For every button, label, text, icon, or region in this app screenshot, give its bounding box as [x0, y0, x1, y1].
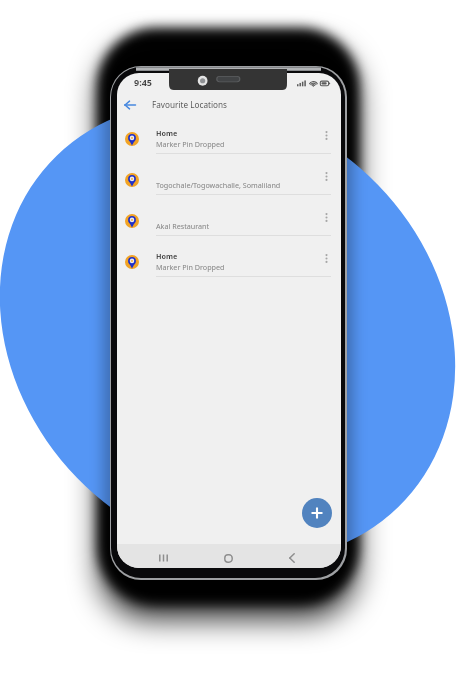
button[interactable]: Add location — [302, 498, 332, 528]
button[interactable]: Togochale/Togowachalle, Somaliland — [117, 154, 341, 195]
button[interactable]: More options — [319, 127, 333, 143]
button[interactable]: Home — [117, 236, 341, 277]
staticText: 9:45 — [134, 76, 152, 88]
button[interactable]: Back — [281, 548, 303, 568]
button[interactable]: Home — [217, 548, 239, 568]
button[interactable]: More options — [319, 250, 333, 266]
button[interactable]: Recents — [152, 548, 174, 568]
button[interactable]: Home — [117, 113, 341, 154]
button[interactable]: Akal Restaurant — [117, 195, 341, 236]
staticText: Home — [156, 251, 178, 261]
button[interactable]: Back — [119, 94, 140, 115]
staticText: Akal Restaurant — [156, 221, 210, 231]
staticText: Marker Pin Dropped — [156, 139, 225, 149]
button[interactable]: More options — [319, 209, 333, 225]
staticText: Home — [156, 128, 178, 138]
staticText: Togochale/Togowachalle, Somaliland — [156, 180, 281, 190]
staticText: Marker Pin Dropped — [156, 262, 225, 272]
button[interactable]: More options — [319, 168, 333, 184]
staticText: Favourite Locations — [152, 99, 227, 110]
